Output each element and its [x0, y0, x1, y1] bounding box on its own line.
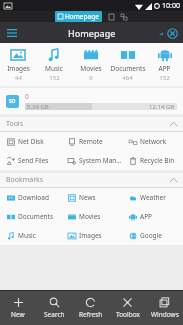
staticText: System Man...	[79, 156, 122, 165]
staticText: Music	[18, 231, 36, 240]
staticText: Tools	[6, 119, 24, 129]
staticText: 0	[25, 92, 29, 101]
button[interactable]: Net Disk	[0, 132, 61, 151]
button[interactable]: Send Files	[0, 151, 61, 170]
staticText: Weather	[140, 193, 166, 202]
button[interactable]: APP	[146, 47, 183, 83]
button[interactable]: Images	[61, 226, 122, 245]
button[interactable]: Music	[36, 47, 72, 83]
button[interactable]: Documents	[0, 207, 61, 226]
staticText: Images	[7, 64, 30, 73]
button[interactable]: Movies	[72, 47, 109, 83]
staticText: Google	[140, 231, 162, 240]
staticText: APP	[140, 212, 153, 221]
staticText: Images	[79, 231, 102, 240]
button[interactable]: Tools	[0, 117, 183, 131]
button[interactable]: News	[61, 188, 122, 207]
button[interactable]: Close	[165, 26, 179, 40]
staticText: 44	[15, 74, 22, 82]
staticText: Remote Man...	[79, 137, 122, 146]
staticText: 152	[49, 74, 60, 82]
staticText: Download	[18, 193, 49, 202]
staticText: Recycle Bin	[140, 156, 175, 165]
staticText: 0	[89, 74, 93, 82]
staticText: Toolbox	[116, 310, 140, 319]
staticText: Homepage	[68, 27, 116, 39]
button[interactable]: New	[0, 291, 36, 325]
staticText: 464	[122, 74, 133, 82]
staticText: Windows	[151, 310, 179, 319]
button[interactable]: Images	[0, 47, 36, 83]
button[interactable]: Bookmarks	[0, 173, 183, 187]
button[interactable]: APP	[122, 207, 183, 226]
button[interactable]: Toolbox	[109, 291, 146, 325]
button[interactable]: Network	[122, 132, 183, 151]
staticText: Refresh	[79, 310, 103, 319]
staticText: Network	[140, 137, 167, 146]
button[interactable]: Search	[36, 291, 72, 325]
button[interactable]: Refresh	[72, 291, 109, 325]
staticText: Net Disk	[18, 137, 44, 146]
button[interactable]: Movies	[61, 207, 122, 226]
button[interactable]: Weather	[122, 188, 183, 207]
staticText: Movies	[79, 212, 101, 221]
staticText: News	[79, 193, 96, 202]
button[interactable]: Google	[122, 226, 183, 245]
button[interactable]: Remote Man...	[61, 132, 122, 151]
button[interactable]: Documents	[109, 47, 146, 83]
button[interactable]: Menu	[5, 26, 19, 40]
staticText: APP	[158, 64, 171, 73]
staticText: SD	[9, 98, 16, 105]
staticText: Movies	[80, 64, 102, 73]
button[interactable]: Download	[0, 188, 61, 207]
staticText: Documents	[18, 212, 54, 221]
button[interactable]: System Man...	[61, 151, 122, 170]
button[interactable]: Windows	[146, 291, 183, 325]
staticText: New	[11, 310, 25, 319]
staticText: Bookmarks	[6, 175, 44, 185]
button[interactable]: Music	[0, 226, 61, 245]
button[interactable]: Tabs	[119, 12, 128, 21]
staticText: Send Files	[18, 156, 49, 165]
button[interactable]: Homepage	[55, 11, 102, 22]
staticText: 12.14 GB	[149, 103, 175, 110]
button[interactable]: Recycle Bin	[122, 151, 183, 170]
staticText: Music	[45, 64, 63, 73]
staticText: Documents	[110, 64, 146, 73]
staticText: Search	[44, 310, 65, 319]
staticText: 152	[159, 74, 170, 82]
button[interactable]: SD	[0, 88, 183, 114]
button[interactable]: New tab	[107, 12, 116, 21]
staticText: 5.34 GB	[27, 103, 49, 110]
staticText: Homepage	[65, 12, 99, 21]
staticText: 10:00	[162, 1, 180, 11]
